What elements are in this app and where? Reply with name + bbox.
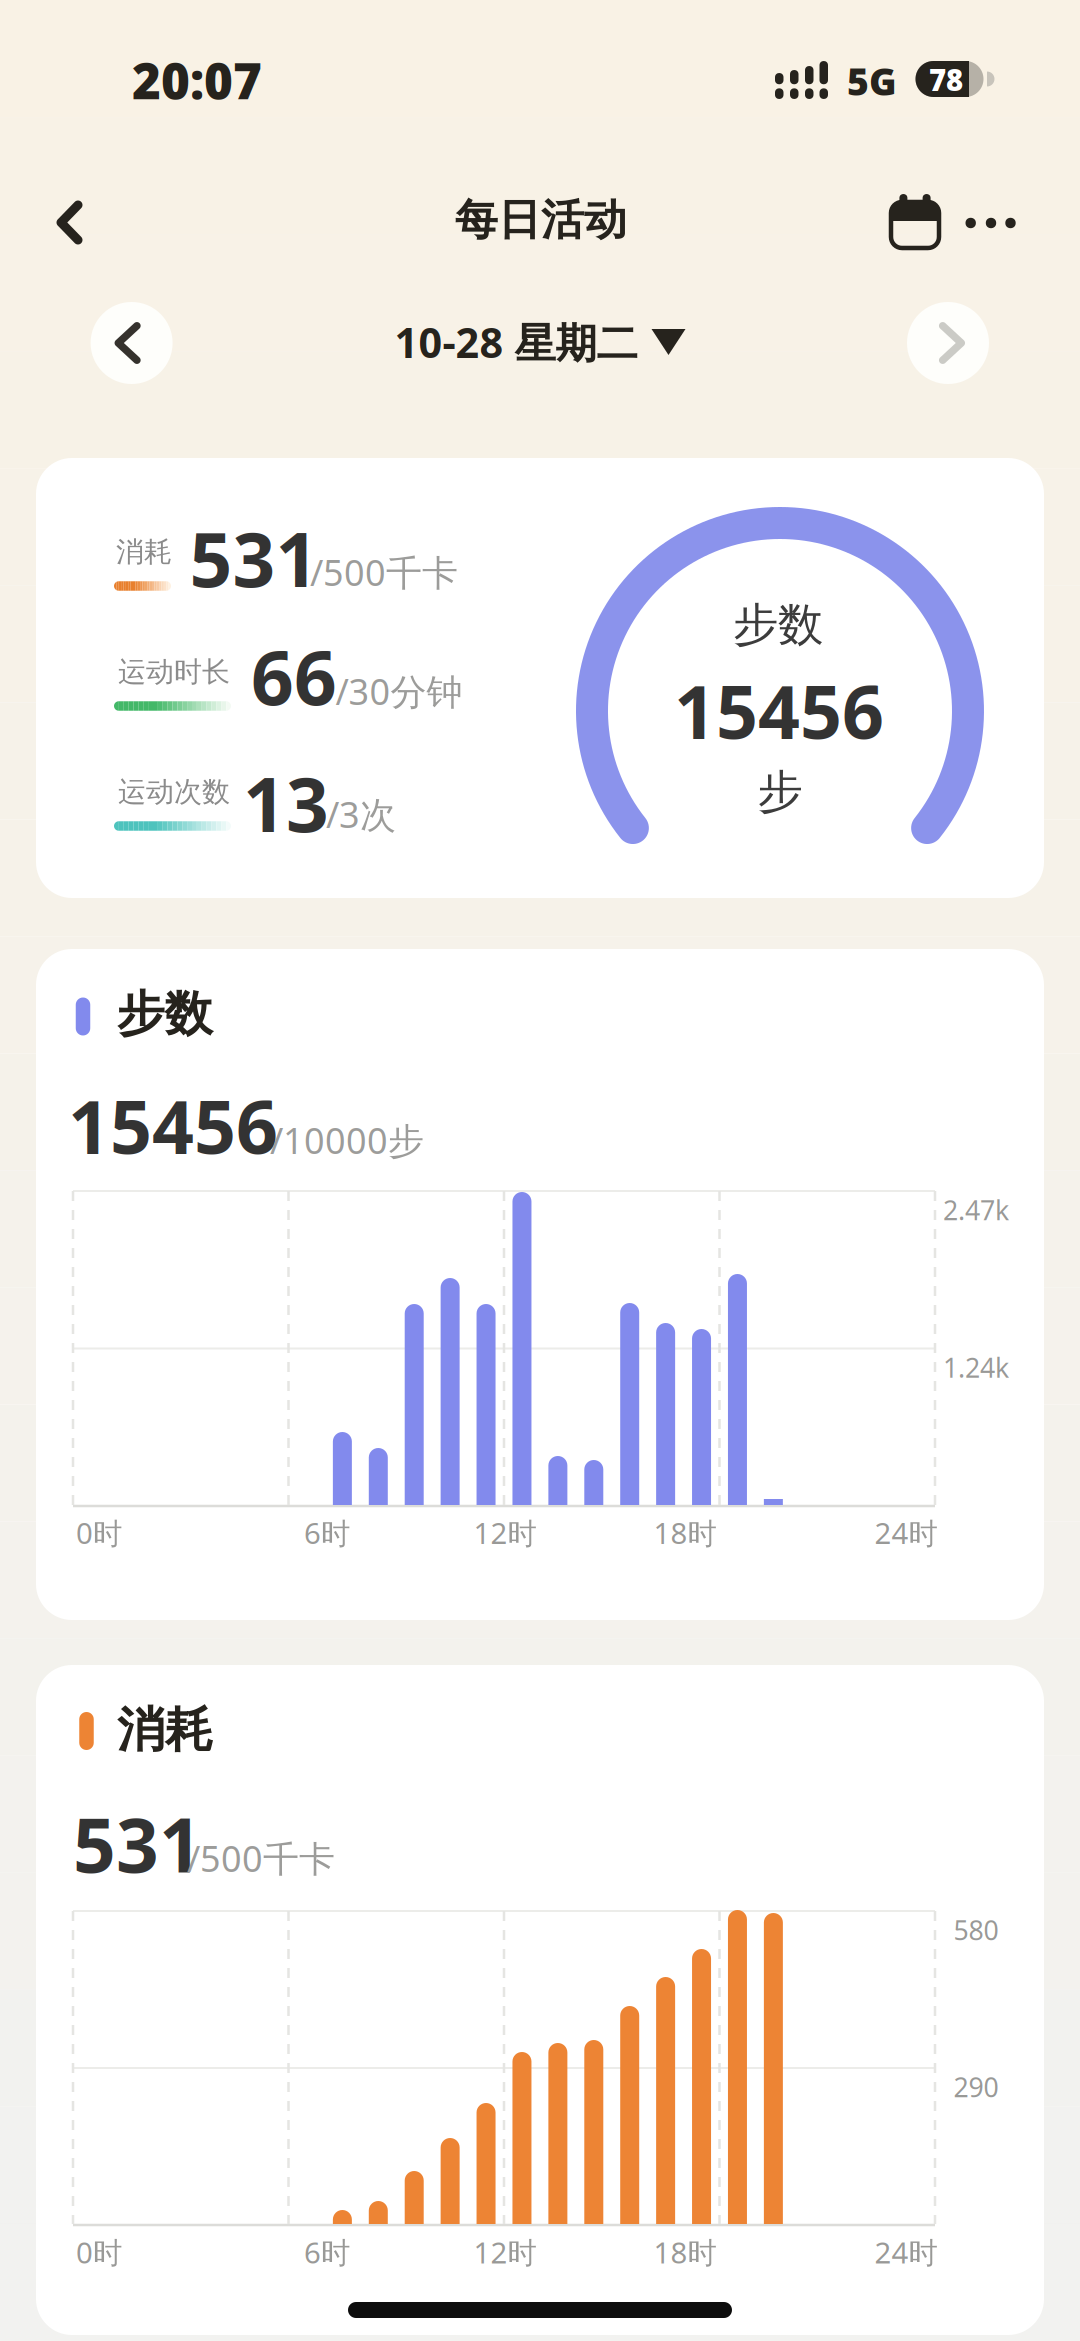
button[interactable]: Next day [907,302,989,384]
staticText: 12时 [473,1513,536,1552]
staticText: 66 [251,626,337,726]
staticText: 13 [243,753,329,853]
staticText: /10000步 [270,1116,424,1164]
staticText: /3次 [326,790,396,838]
staticText: 12时 [473,2232,536,2271]
staticText: 24时 [874,2232,937,2271]
staticText: 运动次数 [118,775,230,809]
staticText: 运动时长 [118,655,230,689]
staticText: /30分钟 [335,667,462,715]
staticText: 消耗 [116,535,172,569]
staticText: 5G [847,56,897,106]
staticText: 2.47k [943,1192,1009,1228]
staticText: 1.24k [943,1350,1009,1385]
staticText: 15456 [674,662,884,759]
button[interactable]: Previous day [91,302,173,384]
button[interactable]: Calendar [880,190,950,260]
staticText: 78 [929,60,963,99]
staticText: 18时 [653,1513,716,1552]
staticText: 580 [953,1912,998,1948]
button[interactable]: More [951,183,1031,263]
staticText: 15456 [68,1077,278,1174]
staticText: 每日活动 [455,194,627,246]
staticText: /500千卡 [187,1834,335,1882]
staticText: 步数 [733,597,823,653]
staticText: 消耗 [117,1700,213,1759]
staticText: 531 [73,1794,202,1893]
staticText: /500千卡 [310,548,458,596]
staticText: 步 [757,764,802,820]
button[interactable]: Back [29,172,109,272]
staticText: 6时 [304,1513,350,1552]
staticText: 10-28 星期二 [394,315,637,369]
staticText: 531 [189,508,318,608]
staticText: 步数 [116,984,212,1043]
staticText: 290 [953,2069,998,2105]
button[interactable]: 10-28 星期二 [394,315,685,369]
staticText: 18时 [653,2232,716,2271]
staticText: 6时 [304,2232,350,2271]
staticText: 0时 [76,2232,122,2271]
staticText: 20:07 [132,47,262,113]
staticText: 24时 [874,1513,937,1552]
staticText: 0时 [76,1513,122,1552]
